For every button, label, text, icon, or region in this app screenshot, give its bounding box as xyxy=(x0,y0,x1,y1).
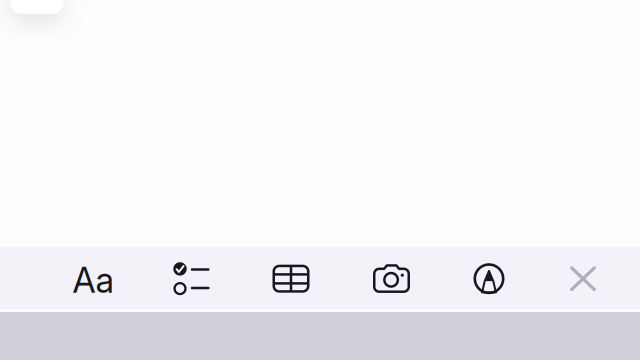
button[interactable]: Insert photo xyxy=(343,248,439,310)
button[interactable]: Text format xyxy=(32,248,152,310)
button[interactable]: Table xyxy=(243,248,339,310)
button[interactable]: Markup xyxy=(441,248,537,310)
staticText: Aa xyxy=(72,259,113,301)
button[interactable]: Dismiss keyboard xyxy=(535,248,631,310)
button[interactable]: Checklist xyxy=(143,248,239,310)
